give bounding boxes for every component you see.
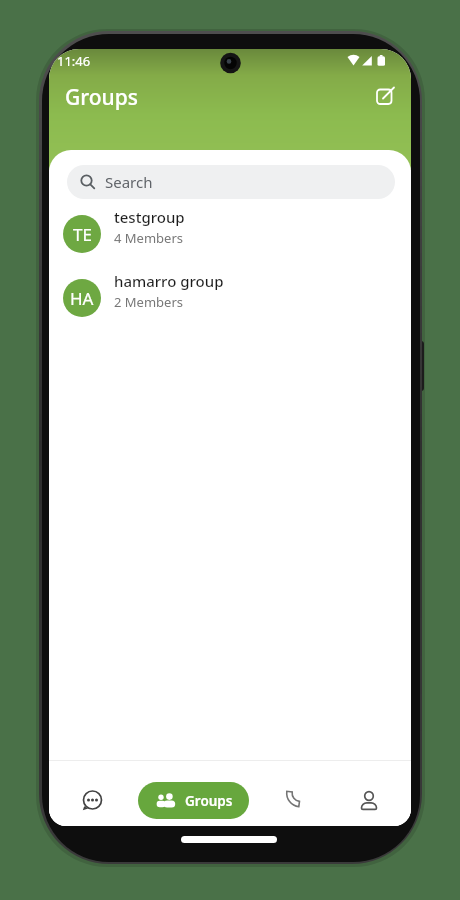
staticText: Search [105, 172, 153, 192]
staticText: Groups [65, 83, 138, 112]
button[interactable]: TE [49, 202, 411, 266]
staticText: hamarro group [114, 271, 224, 291]
staticText: TE [73, 223, 92, 246]
button[interactable]: Groups [138, 782, 249, 819]
button[interactable] [357, 788, 381, 812]
staticText: 4 Members [114, 229, 184, 247]
staticText: Groups [185, 792, 233, 810]
button[interactable] [283, 788, 307, 812]
staticText: 2 Members [114, 293, 184, 311]
staticText: 11:46 [57, 52, 91, 70]
button[interactable]: Search [67, 165, 395, 199]
button[interactable] [374, 84, 396, 106]
staticText: testgroup [114, 207, 185, 227]
staticText: HA [70, 287, 94, 310]
button[interactable] [80, 789, 104, 813]
button[interactable]: HA [49, 266, 411, 330]
